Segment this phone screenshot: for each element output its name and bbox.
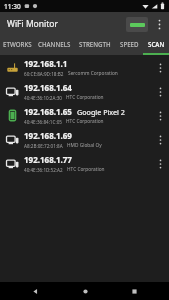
- button[interactable]: SCAN: [143, 36, 169, 55]
- staticText: A8:2B:0E:72:01:8A: [24, 143, 63, 149]
- staticText: WiFi Monitor: [7, 18, 58, 30]
- staticText: 60:CE:8A:9D:18:B2: [24, 71, 64, 77]
- staticText: Google Pixel 2: [77, 107, 125, 117]
- button[interactable]: 192.168.1.69: [0, 127, 169, 151]
- button[interactable]: Back: [20, 282, 50, 300]
- button[interactable]: Device options: [153, 104, 167, 127]
- staticText: 192.168.1.69: [24, 130, 72, 141]
- staticText: 192.168.1.65: [24, 106, 72, 117]
- button[interactable]: More options: [152, 13, 166, 35]
- staticText: CHANNELS: [38, 40, 71, 48]
- staticText: 192.168.1.77: [24, 154, 72, 165]
- button[interactable]: 192.168.1.1: [0, 55, 169, 79]
- staticText: HMD Global Oy: [67, 142, 102, 149]
- staticText: HTC Corporation: [66, 118, 104, 125]
- button[interactable]: 192.168.1.65: [0, 103, 169, 127]
- button[interactable]: 192.168.1.64: [0, 79, 169, 103]
- button[interactable]: Toggle scanning: [126, 17, 148, 32]
- staticText: Sercomm Corporation: [68, 70, 118, 77]
- staticText: 40:4E:36:1D:52:A2: [24, 167, 63, 173]
- button[interactable]: Recent apps: [119, 282, 149, 300]
- staticText: 40:4E:36:10:2A:30: [24, 95, 62, 101]
- button[interactable]: Device options: [153, 80, 167, 103]
- staticText: STRENGTH: [79, 40, 111, 48]
- staticText: HTC Corporation: [66, 94, 104, 101]
- button[interactable]: Device options: [153, 152, 167, 175]
- staticText: HTC Corporation: [67, 166, 105, 173]
- button[interactable]: SPEED: [115, 36, 143, 55]
- staticText: ETWORKS: [3, 40, 32, 48]
- button[interactable]: CHANNELS: [35, 36, 74, 55]
- button[interactable]: 192.168.1.77: [0, 151, 169, 175]
- button[interactable]: ETWORKS: [0, 36, 35, 55]
- staticText: 40:4E:36:84:1C:05: [24, 119, 62, 125]
- button[interactable]: Device options: [153, 128, 167, 151]
- staticText: SCAN: [148, 40, 165, 48]
- button[interactable]: Home: [70, 282, 100, 300]
- staticText: 192.168.1.1: [24, 58, 68, 69]
- button[interactable]: STRENGTH: [74, 36, 115, 55]
- staticText: SPEED: [120, 40, 139, 48]
- staticText: 192.168.1.64: [24, 82, 72, 93]
- button[interactable]: Device options: [153, 56, 167, 79]
- staticText: 11:30: [4, 2, 21, 11]
